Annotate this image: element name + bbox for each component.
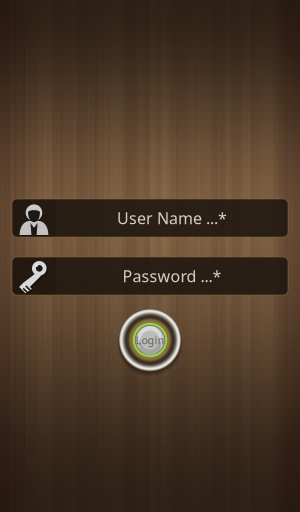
- button[interactable]: Password ...*: [12, 257, 288, 295]
- staticText: Login: [135, 333, 164, 347]
- staticText: Password ...*: [122, 265, 221, 287]
- button[interactable]: Login: [116, 306, 184, 374]
- button[interactable]: User Name ...*: [12, 199, 288, 237]
- staticText: User Name ...*: [117, 207, 227, 229]
